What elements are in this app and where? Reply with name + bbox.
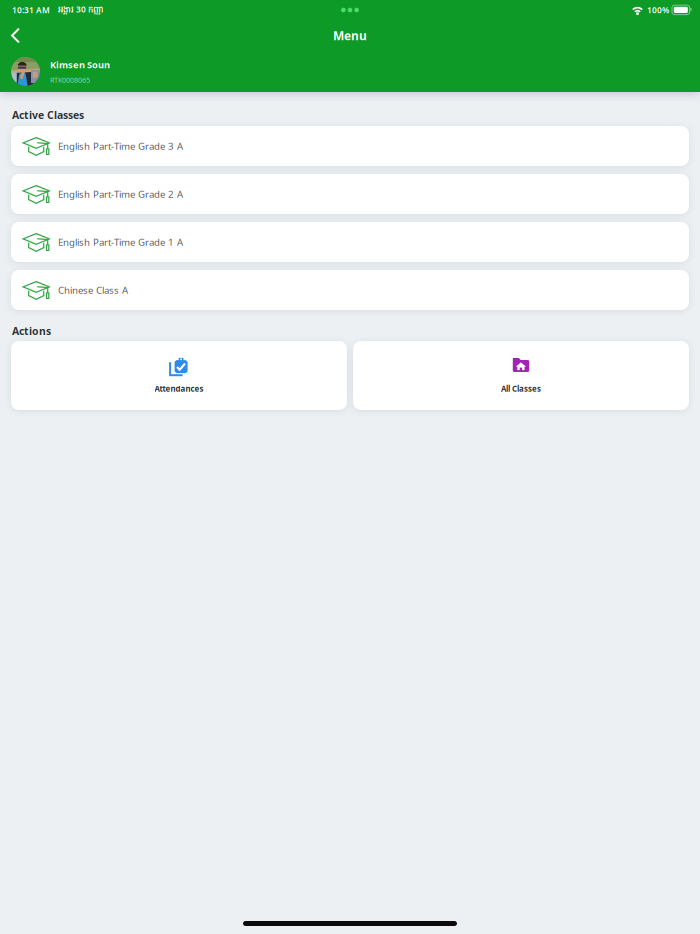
staticText: Active Classes	[12, 108, 84, 122]
button[interactable]: All Classes	[353, 341, 689, 410]
staticText: អង្គារ 30 កញ្ញា	[58, 3, 104, 17]
staticText: 10:31 AM	[12, 4, 50, 16]
staticText: Kimsen Soun	[50, 58, 110, 71]
button[interactable]: Chinese Class A	[11, 270, 689, 310]
staticText: All Classes	[501, 383, 541, 394]
staticText: English Part-Time Grade 3 A	[58, 139, 183, 153]
staticText: English Part-Time Grade 2 A	[58, 187, 183, 201]
button[interactable]: English Part-Time Grade 1 A	[11, 222, 689, 262]
button[interactable]: English Part-Time Grade 2 A	[11, 174, 689, 214]
staticText: Actions	[12, 324, 51, 338]
button[interactable]: English Part-Time Grade 3 A	[11, 126, 689, 166]
staticText: Attendances	[154, 383, 203, 394]
staticText: 100%	[647, 4, 669, 16]
staticText: English Part-Time Grade 1 A	[58, 235, 183, 249]
staticText: RTK0008065	[50, 75, 90, 85]
staticText: Menu	[333, 27, 367, 44]
staticText: Chinese Class A	[58, 283, 128, 297]
button[interactable]: Kimsen Soun	[0, 51, 700, 92]
button[interactable]: Attendances	[11, 341, 347, 410]
button[interactable]: Back	[0, 20, 31, 51]
